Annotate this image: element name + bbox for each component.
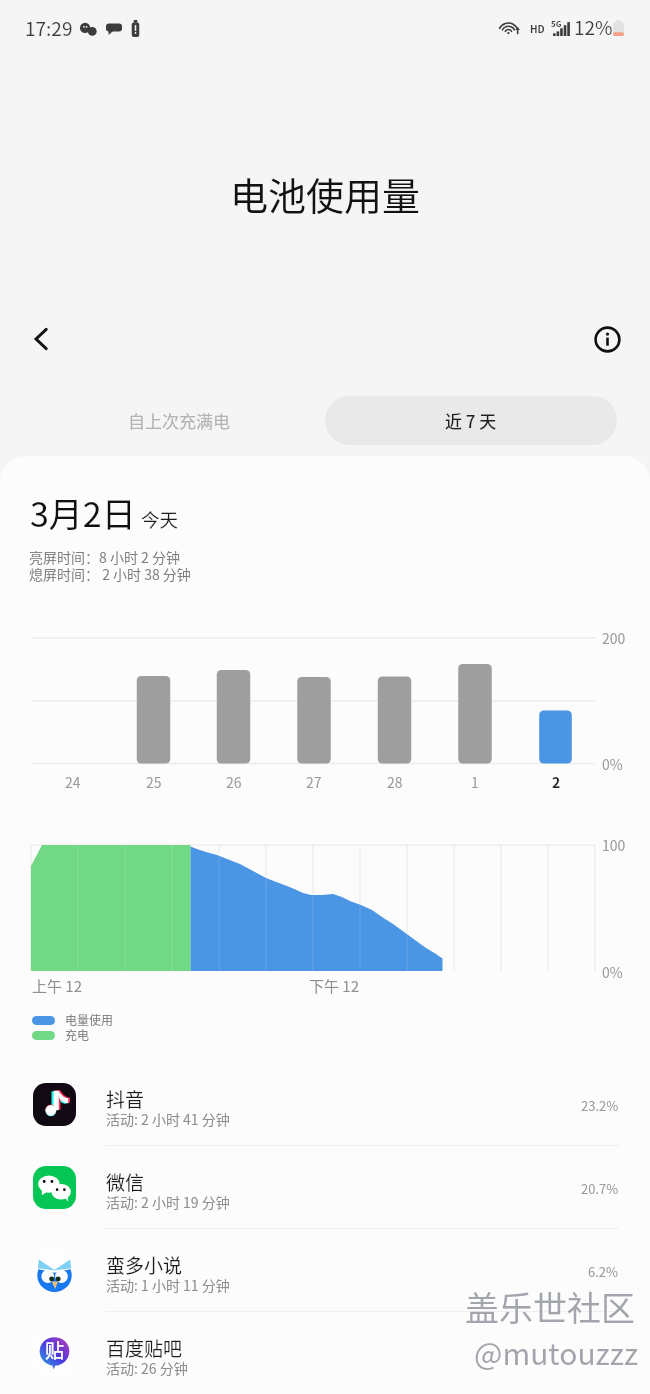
staticText: 23.2%	[581, 1096, 619, 1115]
staticText: 活动: 26 分钟	[106, 1358, 188, 1378]
staticText: 活动: 1 小时 11 分钟	[106, 1275, 230, 1295]
staticText: 贴	[45, 1336, 65, 1364]
button[interactable]: Information	[583, 315, 631, 363]
staticText: 27	[306, 772, 322, 792]
staticText: @mutouzzz	[474, 1330, 639, 1373]
staticText: 5G	[551, 18, 562, 30]
button[interactable]: 近 7 天	[325, 396, 617, 445]
staticText: 抖音	[106, 1085, 145, 1113]
staticText: 100	[602, 835, 626, 855]
staticText: HD	[530, 21, 545, 35]
staticText: 电量使用	[65, 1011, 114, 1028]
button[interactable]: 贴	[0, 1312, 650, 1394]
staticText: 200	[602, 628, 626, 648]
staticText: 活动: 2 小时 19 分钟	[106, 1192, 230, 1212]
staticText: 20.7%	[581, 1179, 619, 1198]
staticText: 亮屏时间：8 小时 2 分钟	[29, 547, 180, 567]
staticText: 2	[552, 772, 561, 792]
staticText: 25	[146, 772, 162, 792]
staticText: 24	[65, 772, 81, 792]
button[interactable]: 蛮多小说	[0, 1229, 650, 1312]
staticText: 28	[387, 772, 403, 792]
button[interactable]: 抖音	[0, 1063, 650, 1146]
staticText: 电池使用量	[230, 166, 421, 221]
button[interactable]: Back	[17, 315, 65, 363]
staticText: 17:29	[25, 14, 73, 42]
staticText: 蛮多小说	[106, 1251, 183, 1279]
staticText: 0%	[602, 962, 623, 982]
staticText: 盖乐世社区	[465, 1282, 635, 1331]
staticText: 微信	[106, 1168, 145, 1196]
staticText: 0%	[602, 754, 623, 774]
staticText: @mutouzzz	[475, 1331, 640, 1374]
staticText: 近 7 天	[445, 408, 497, 433]
staticText: 1	[471, 772, 479, 792]
staticText: 上午 12	[32, 975, 83, 997]
staticText: 自上次充满电	[128, 408, 230, 433]
staticText: 百度贴吧	[106, 1334, 183, 1362]
button[interactable]: 微信	[0, 1146, 650, 1229]
staticText: 3月2日	[30, 488, 136, 537]
staticText: 盖乐世社区	[466, 1283, 636, 1332]
staticText: 12%	[574, 13, 613, 41]
staticText: 今天	[141, 506, 179, 533]
staticText: 充电	[65, 1026, 90, 1043]
staticText: 26	[226, 772, 242, 792]
staticText: 活动: 2 小时 41 分钟	[106, 1109, 230, 1129]
staticText: 6.2%	[588, 1262, 619, 1281]
button[interactable]: 自上次充满电	[33, 396, 325, 445]
staticText: 熄屏时间： 2 小时 38 分钟	[29, 564, 191, 584]
staticText: 下午 12	[309, 975, 360, 997]
